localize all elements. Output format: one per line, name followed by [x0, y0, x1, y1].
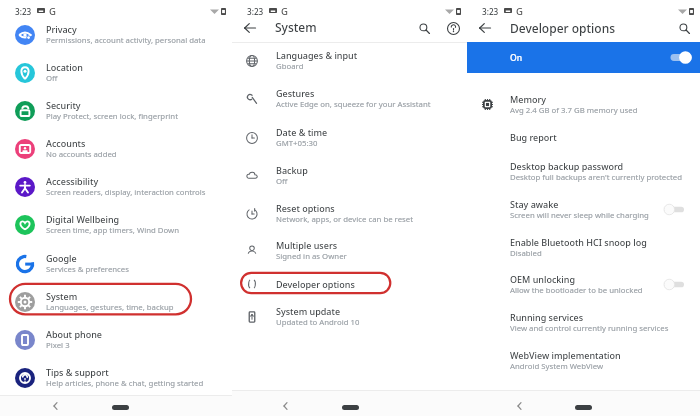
button[interactable]: Multiple users	[232, 232, 467, 269]
staticText: Privacy	[46, 23, 77, 35]
staticText: Enable Bluetooth HCI snoop log	[510, 236, 647, 248]
button[interactable]: Search	[414, 18, 434, 38]
staticText: 3:23	[482, 6, 499, 17]
staticText: Digital Wellbeing	[46, 213, 120, 225]
staticText: Tips & support	[46, 366, 109, 378]
staticText: Gestures	[276, 87, 315, 99]
button[interactable]: OEM unlocking	[467, 266, 700, 302]
staticText: Avg 2.4 GB of 3.7 GB memory used	[510, 105, 638, 116]
staticText: Signed in as Owner	[276, 251, 347, 262]
staticText: Desktop backup password	[510, 160, 624, 172]
button[interactable]: Languages & input	[232, 42, 467, 79]
button[interactable]: Security	[0, 92, 232, 129]
staticText: G	[281, 5, 288, 18]
staticText: Developer options	[276, 278, 355, 290]
staticText: Allow the bootloader to be unlocked	[510, 285, 643, 296]
staticText: Accessibility	[46, 175, 99, 187]
button[interactable]: Google	[0, 245, 232, 282]
staticText: Desktop full backups aren't currently pr…	[510, 172, 682, 183]
staticText: Help articles, phone & chat, getting sta…	[46, 378, 204, 389]
staticText: Date & time	[276, 126, 328, 138]
button[interactable]: Running services	[467, 304, 700, 340]
staticText: Reset options	[276, 202, 335, 214]
staticText: GMT+05:30	[276, 138, 318, 149]
button[interactable]: Desktop backup password	[467, 153, 700, 189]
button[interactable]: Home	[112, 405, 129, 410]
staticText: Active Edge on, squeeze for your Assista…	[276, 99, 431, 110]
staticText: Languages & input	[276, 49, 358, 61]
staticText: G	[516, 5, 523, 18]
button[interactable]: Digital Wellbeing	[0, 206, 232, 243]
staticText: Languages, gestures, time, backup	[46, 302, 174, 313]
button[interactable]: Help	[443, 18, 463, 38]
button[interactable]: Automatic system updates	[467, 378, 700, 414]
button[interactable]: Back	[475, 18, 495, 38]
staticText: Bug report	[510, 131, 557, 143]
staticText: Play Protect, screen lock, fingerprint	[46, 111, 179, 122]
staticText: Android System WebView	[510, 361, 604, 372]
button[interactable]: Back	[240, 18, 260, 38]
button[interactable]: Accessibility	[0, 168, 232, 205]
staticText: 3:23	[15, 6, 32, 17]
button[interactable]: Privacy	[0, 16, 232, 53]
staticText: Stay awake	[510, 198, 559, 210]
button[interactable]: Back	[512, 399, 526, 413]
staticText: Accounts	[46, 137, 86, 149]
button[interactable]: Tips & support	[0, 359, 232, 396]
staticText: Off	[46, 73, 58, 84]
staticText: System	[46, 290, 78, 302]
staticText: G	[49, 5, 56, 18]
button[interactable]: Date & time	[232, 119, 467, 156]
button[interactable]: Backup	[232, 157, 467, 194]
staticText: OEM unlocking	[510, 273, 575, 285]
staticText: Gboard	[276, 61, 304, 72]
button[interactable]: Home	[342, 405, 359, 410]
staticText: Running services	[510, 311, 584, 323]
staticText: Permissions, account activity, personal …	[46, 35, 206, 46]
staticText: Location	[46, 61, 83, 73]
button[interactable]: Location	[0, 54, 232, 91]
button[interactable]: Reset options	[232, 195, 467, 232]
staticText: View and control currently running servi…	[510, 323, 669, 334]
staticText: System update	[276, 305, 341, 317]
staticText: Security	[46, 99, 81, 111]
staticText: No accounts added	[46, 149, 117, 160]
staticText: Network, apps, or device can be reset	[276, 214, 414, 225]
staticText: 3:23	[247, 6, 264, 17]
staticText: Developer options	[510, 20, 616, 36]
button[interactable]: System	[0, 283, 232, 320]
button[interactable]: Back	[48, 399, 62, 413]
staticText: Google	[46, 252, 77, 264]
staticText: About phone	[46, 328, 102, 340]
staticText: Memory	[510, 93, 547, 105]
button[interactable]: Stay awake	[467, 191, 700, 227]
staticText: Screen time, app timers, Wind Down	[46, 225, 180, 236]
staticText: Off	[276, 176, 288, 187]
staticText: Backup	[276, 164, 308, 176]
staticText: Multiple users	[276, 239, 338, 251]
staticText: Updated to Android 10	[276, 317, 360, 328]
button[interactable]: Bug report	[467, 119, 700, 155]
button[interactable]: Gestures	[232, 80, 467, 117]
staticText: On	[510, 52, 523, 64]
button[interactable]: On	[467, 42, 700, 73]
staticText: Pixel 3	[46, 340, 70, 351]
staticText: Screen readers, display, interaction con…	[46, 187, 206, 198]
button[interactable]: About phone	[0, 321, 232, 358]
button[interactable]: Accounts	[0, 130, 232, 167]
staticText: Automatic system updates	[510, 390, 625, 402]
button[interactable]: Search	[674, 18, 694, 38]
button[interactable]: Back	[278, 399, 292, 413]
button[interactable]: Home	[575, 405, 592, 410]
staticText: Services & preferences	[46, 264, 129, 275]
staticText: System	[275, 19, 317, 35]
button[interactable]: Memory	[467, 86, 700, 122]
button[interactable]: System update	[232, 298, 467, 335]
staticText: Disabled	[510, 248, 542, 259]
staticText: Screen will never sleep while charging	[510, 210, 649, 221]
button[interactable]: Developer options	[232, 265, 467, 302]
button[interactable]: Enable Bluetooth HCI snoop log	[467, 229, 700, 265]
staticText: WebView implementation	[510, 349, 621, 361]
button[interactable]: WebView implementation	[467, 342, 700, 378]
